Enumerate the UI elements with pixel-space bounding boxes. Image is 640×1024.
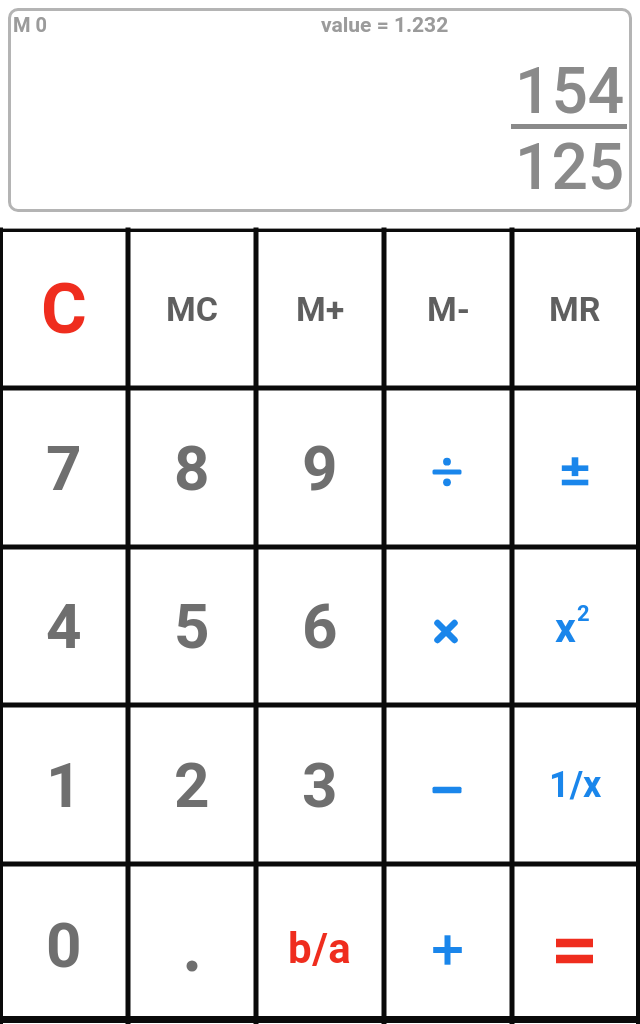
staticText: 5 [174,590,210,663]
staticText: 3 [302,749,338,822]
button[interactable]: MC [130,232,254,386]
button[interactable]: 7 [3,391,125,545]
staticText: 9 [302,432,338,505]
staticText: b/a [288,924,352,973]
staticText: x [555,604,576,652]
staticText: 8 [174,432,210,505]
staticText: 2 [577,601,590,627]
button[interactable]: 9 [258,391,382,545]
button[interactable]: MR [514,232,636,386]
button[interactable]: M+ [258,232,382,386]
button[interactable] [386,867,510,1024]
button[interactable]: 6 [258,550,382,703]
staticText: MC [166,289,219,329]
button[interactable]: 1/x [514,708,636,862]
button[interactable] [386,550,510,703]
staticText: 125 [515,130,625,200]
button[interactable]: C [3,232,125,386]
staticText: MR [549,289,601,329]
button[interactable] [386,391,510,545]
staticText: 1 [46,749,82,822]
button[interactable]: 4 [3,550,125,703]
button[interactable] [386,708,510,862]
staticText: 7 [46,432,82,505]
button[interactable] [130,867,254,1024]
button[interactable]: M- [386,232,510,386]
staticText: 1/x [549,764,602,806]
button[interactable]: 8 [130,391,254,545]
button[interactable]: b/a [258,867,382,1024]
button[interactable] [514,391,636,545]
staticText: 154 [515,54,625,124]
staticText: M- [427,289,470,329]
staticText: M 0 [13,13,47,36]
button[interactable] [8,8,632,212]
button[interactable]: 5 [130,550,254,703]
button[interactable]: 2 [130,708,254,862]
staticText: M+ [296,289,345,329]
staticText: value = 1.232 [321,13,449,38]
staticText: 4 [46,590,82,663]
button[interactable]: 1 [3,708,125,862]
staticText: 2 [174,749,210,822]
button[interactable]: x [514,550,636,703]
button[interactable]: 0 [3,867,125,1024]
button[interactable] [514,867,636,1024]
staticText: C [41,268,87,350]
button[interactable]: 3 [258,708,382,862]
staticText: 6 [302,590,338,663]
staticText: 0 [46,909,82,982]
